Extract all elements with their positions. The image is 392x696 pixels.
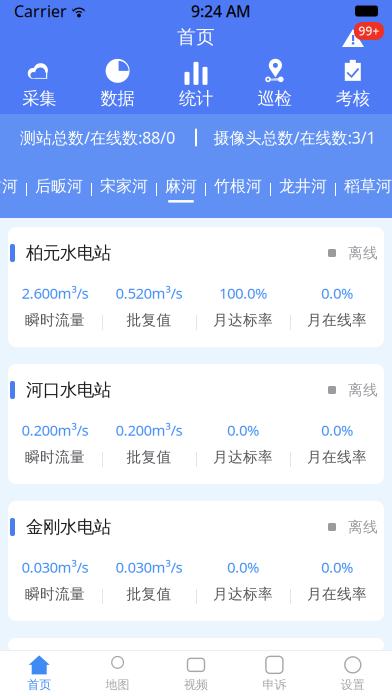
staticText: 月在线率 bbox=[307, 585, 367, 603]
button[interactable]: 巡检 bbox=[235, 57, 314, 109]
staticText: 100.0% bbox=[219, 283, 267, 303]
staticText: 0.0% bbox=[227, 557, 259, 577]
button[interactable]: 统计 bbox=[157, 57, 235, 109]
staticText: 申诉 bbox=[262, 677, 286, 692]
staticText: 月达标率 bbox=[213, 448, 273, 466]
staticText: 月在线率 bbox=[307, 448, 367, 466]
staticText: 99+ bbox=[358, 23, 379, 39]
button[interactable]: 采集 bbox=[0, 57, 78, 109]
staticText: 离线 bbox=[348, 244, 378, 262]
staticText: 瞬时流量 bbox=[25, 585, 85, 603]
staticText: 月达标率 bbox=[213, 311, 273, 329]
staticText: 采集 bbox=[22, 88, 56, 109]
staticText: 设置 bbox=[341, 677, 365, 692]
staticText: 0.0% bbox=[321, 557, 353, 577]
button[interactable]: 视频 bbox=[157, 654, 235, 692]
staticText: 宋家河 bbox=[100, 176, 148, 196]
staticText: 竹根河 bbox=[214, 176, 262, 196]
button[interactable]: 竹根河 bbox=[206, 176, 270, 203]
button[interactable]: 申诉 bbox=[235, 654, 314, 692]
staticText: 视频 bbox=[184, 677, 208, 692]
staticText: 瞬时流量 bbox=[25, 311, 85, 329]
staticText: 0.200m³/s bbox=[21, 420, 88, 440]
staticText: 麻河 bbox=[165, 176, 197, 196]
staticText: 0.520m³/s bbox=[115, 283, 182, 303]
staticText: 月达标率 bbox=[213, 585, 273, 603]
staticText: 数据 bbox=[101, 88, 135, 109]
staticText: Carrier bbox=[14, 0, 67, 22]
button[interactable]: 地图 bbox=[78, 654, 157, 692]
staticText: 离线 bbox=[348, 381, 378, 399]
staticText: 稻草河 bbox=[344, 176, 392, 196]
button[interactable]: 麻河 bbox=[157, 176, 205, 203]
staticText: 测站总数/在线数:88/0 bbox=[20, 127, 175, 148]
button[interactable]: 首页 bbox=[0, 654, 78, 692]
staticText: 珺河 bbox=[0, 176, 18, 196]
staticText: 0.030m³/s bbox=[115, 557, 182, 577]
button[interactable]: 设置 bbox=[314, 654, 392, 692]
staticText: 月在线率 bbox=[307, 311, 367, 329]
staticText: 摄像头总数/在线数:3/1 bbox=[213, 127, 375, 148]
staticText: 首页 bbox=[177, 25, 215, 48]
button[interactable]: 数据 bbox=[78, 57, 157, 109]
staticText: 0.0% bbox=[321, 283, 353, 303]
staticText: 2.600m³/s bbox=[21, 283, 88, 303]
staticText: 批复值 bbox=[126, 585, 171, 603]
staticText: 首页 bbox=[27, 677, 51, 692]
staticText: 0.200m³/s bbox=[115, 420, 182, 440]
button[interactable]: 珺河 bbox=[0, 176, 26, 203]
staticText: 巡检 bbox=[257, 88, 291, 109]
button[interactable]: 报警 bbox=[340, 22, 386, 52]
staticText: 考核 bbox=[336, 88, 370, 109]
button[interactable]: 宋家河 bbox=[92, 176, 156, 203]
staticText: 9:24 AM bbox=[191, 0, 251, 22]
button[interactable]: 后畈河 bbox=[27, 176, 91, 203]
staticText: 批复值 bbox=[126, 448, 171, 466]
button[interactable]: 稻草河 bbox=[336, 176, 392, 203]
staticText: 统计 bbox=[179, 88, 213, 109]
staticText: 瞬时流量 bbox=[25, 448, 85, 466]
staticText: 0.0% bbox=[227, 420, 259, 440]
staticText: 后畈河 bbox=[35, 176, 83, 196]
staticText: 0.030m³/s bbox=[21, 557, 88, 577]
staticText: 地图 bbox=[106, 677, 130, 692]
button[interactable]: 龙井河 bbox=[271, 176, 335, 203]
staticText: 龙井河 bbox=[279, 176, 327, 196]
staticText: 河口水电站 bbox=[26, 379, 111, 401]
staticText: 柏元水电站 bbox=[26, 242, 111, 264]
staticText: 金刚水电站 bbox=[26, 516, 111, 538]
staticText: 批复值 bbox=[126, 311, 171, 329]
button[interactable]: 考核 bbox=[314, 57, 392, 109]
staticText: 离线 bbox=[348, 518, 378, 536]
staticText: 0.0% bbox=[321, 420, 353, 440]
